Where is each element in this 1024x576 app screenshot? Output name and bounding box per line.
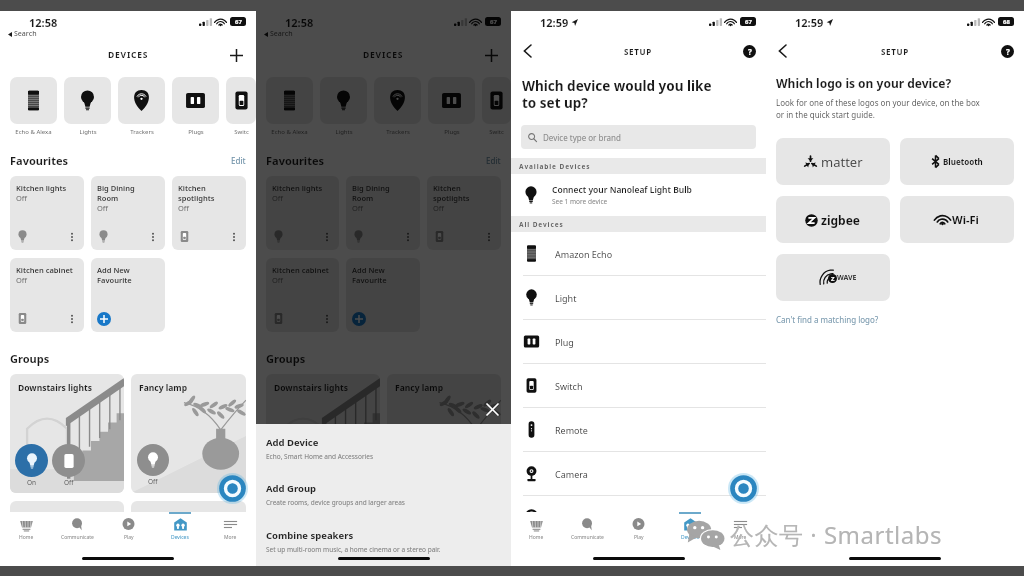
button[interactable]: Add Group [266,482,511,507]
button[interactable]: Kitchen spotlights [172,176,246,250]
button[interactable]: Off [308,444,341,487]
button[interactable]: More options [402,231,414,243]
button[interactable]: More options [321,231,333,243]
button[interactable]: Back [772,41,792,61]
button[interactable]: More options [483,231,495,243]
button[interactable]: Switc [482,77,511,136]
staticText: Add New Favourite [352,265,387,285]
button[interactable] [137,444,169,476]
button[interactable]: Communicate [562,512,613,554]
button[interactable]: Devices [664,512,715,554]
button[interactable]: Home [256,512,307,554]
button[interactable]: Play [103,512,154,554]
button[interactable]: On [271,444,304,487]
button[interactable]: Add device [481,45,501,65]
staticText: DEVICES [363,49,404,61]
button[interactable]: Devices [409,512,460,554]
button[interactable]: Devices [154,512,205,554]
button[interactable]: Play [613,512,664,554]
button[interactable]: matter [776,138,890,185]
staticText: Kitchen spotlights [178,183,215,203]
button[interactable]: More [715,512,766,554]
button[interactable]: Switch [511,364,766,408]
staticText: Off [16,193,28,203]
button[interactable]: Help [1001,45,1014,58]
button[interactable]: More options [321,313,333,325]
button[interactable]: Bluetooth [900,138,1014,185]
button[interactable]: Lock [511,496,766,540]
staticText: Remote [555,424,588,436]
button[interactable]: Wi-Fi [900,196,1014,243]
button[interactable]: Lights [320,77,367,136]
button[interactable]: Fancy lamp [387,374,501,493]
button[interactable]: More options [147,231,159,243]
button[interactable]: Kitchen spotlights [427,176,501,250]
button[interactable]: Trackers [118,77,165,136]
staticText: WAVE [837,273,857,283]
button[interactable]: Echo & Alexa [266,77,313,136]
button[interactable]: Kitchen cabinet [10,258,84,332]
button[interactable]: Light [511,276,766,320]
button[interactable]: Add Device [266,436,511,461]
button[interactable]: More [205,512,256,554]
button[interactable]: Device type or brand [521,125,756,149]
button[interactable]: Add New Favourite [346,258,420,332]
button[interactable]: Lights [64,77,111,136]
button[interactable]: Edit [231,155,246,166]
button[interactable]: Edit [486,155,501,166]
staticText: Kitchen cabinet [16,265,73,275]
button[interactable]: Z [776,254,890,301]
button[interactable]: More options [66,313,78,325]
button[interactable]: Kitchen cabinet [266,258,339,332]
button[interactable]: Home [0,512,52,554]
staticText: More [734,534,747,541]
button[interactable]: Home [511,512,562,554]
button[interactable]: Play [358,512,409,554]
button[interactable]: Downstairs lights [266,374,380,493]
button[interactable]: Big Dining Room [346,176,420,250]
button[interactable]: Communicate [52,512,103,554]
button[interactable]: Echo & Alexa [10,77,57,136]
button[interactable]: Combine speakers [266,529,511,554]
staticText: Add Group [266,482,317,495]
button[interactable]: More options [66,231,78,243]
button[interactable]: Connect your Nanoleaf Light Bulb [522,174,766,216]
staticText: Z [831,275,835,283]
staticText: Groups [10,351,50,366]
staticText: 12:59 [540,15,569,30]
staticText: Set up multi-room music, a home cinema o… [266,545,441,554]
button[interactable]: Switc [226,77,256,136]
button[interactable]: Help [743,45,756,58]
staticText: DEVICES [108,49,149,61]
button[interactable]: Plug [511,320,766,364]
button[interactable]: Trackers [374,77,421,136]
staticText: Echo, Smart Home and Accessories [266,452,374,461]
button[interactable]: Add device [226,45,246,65]
button[interactable]: Remote [511,408,766,452]
button[interactable]: Plugs [172,77,219,136]
button[interactable]: Add New Favourite [91,258,165,332]
button[interactable]: Off [52,444,85,487]
button[interactable]: Kitchen lights [266,176,339,250]
button[interactable]: Fancy lamp [131,374,246,493]
button[interactable]: Communicate [307,512,358,554]
button[interactable]: Camera [511,452,766,496]
button[interactable]: Close [483,400,501,418]
staticText: Switc [489,128,504,136]
button[interactable]: zigbee [776,196,890,243]
button[interactable]: Back [517,41,537,61]
button[interactable]: Can't find a matching logo? [776,314,879,325]
button[interactable]: Downstairs lights [10,374,124,493]
button[interactable]: Big Dining Room [91,176,165,250]
button[interactable]: More options [228,231,240,243]
staticText: Plug [555,336,574,348]
button[interactable]: Kitchen lights [10,176,84,250]
button[interactable]: Amazon Echo [511,232,766,276]
button[interactable]: Plugs [428,77,475,136]
button[interactable]: On [15,444,48,487]
staticText: All Devices [519,220,564,229]
